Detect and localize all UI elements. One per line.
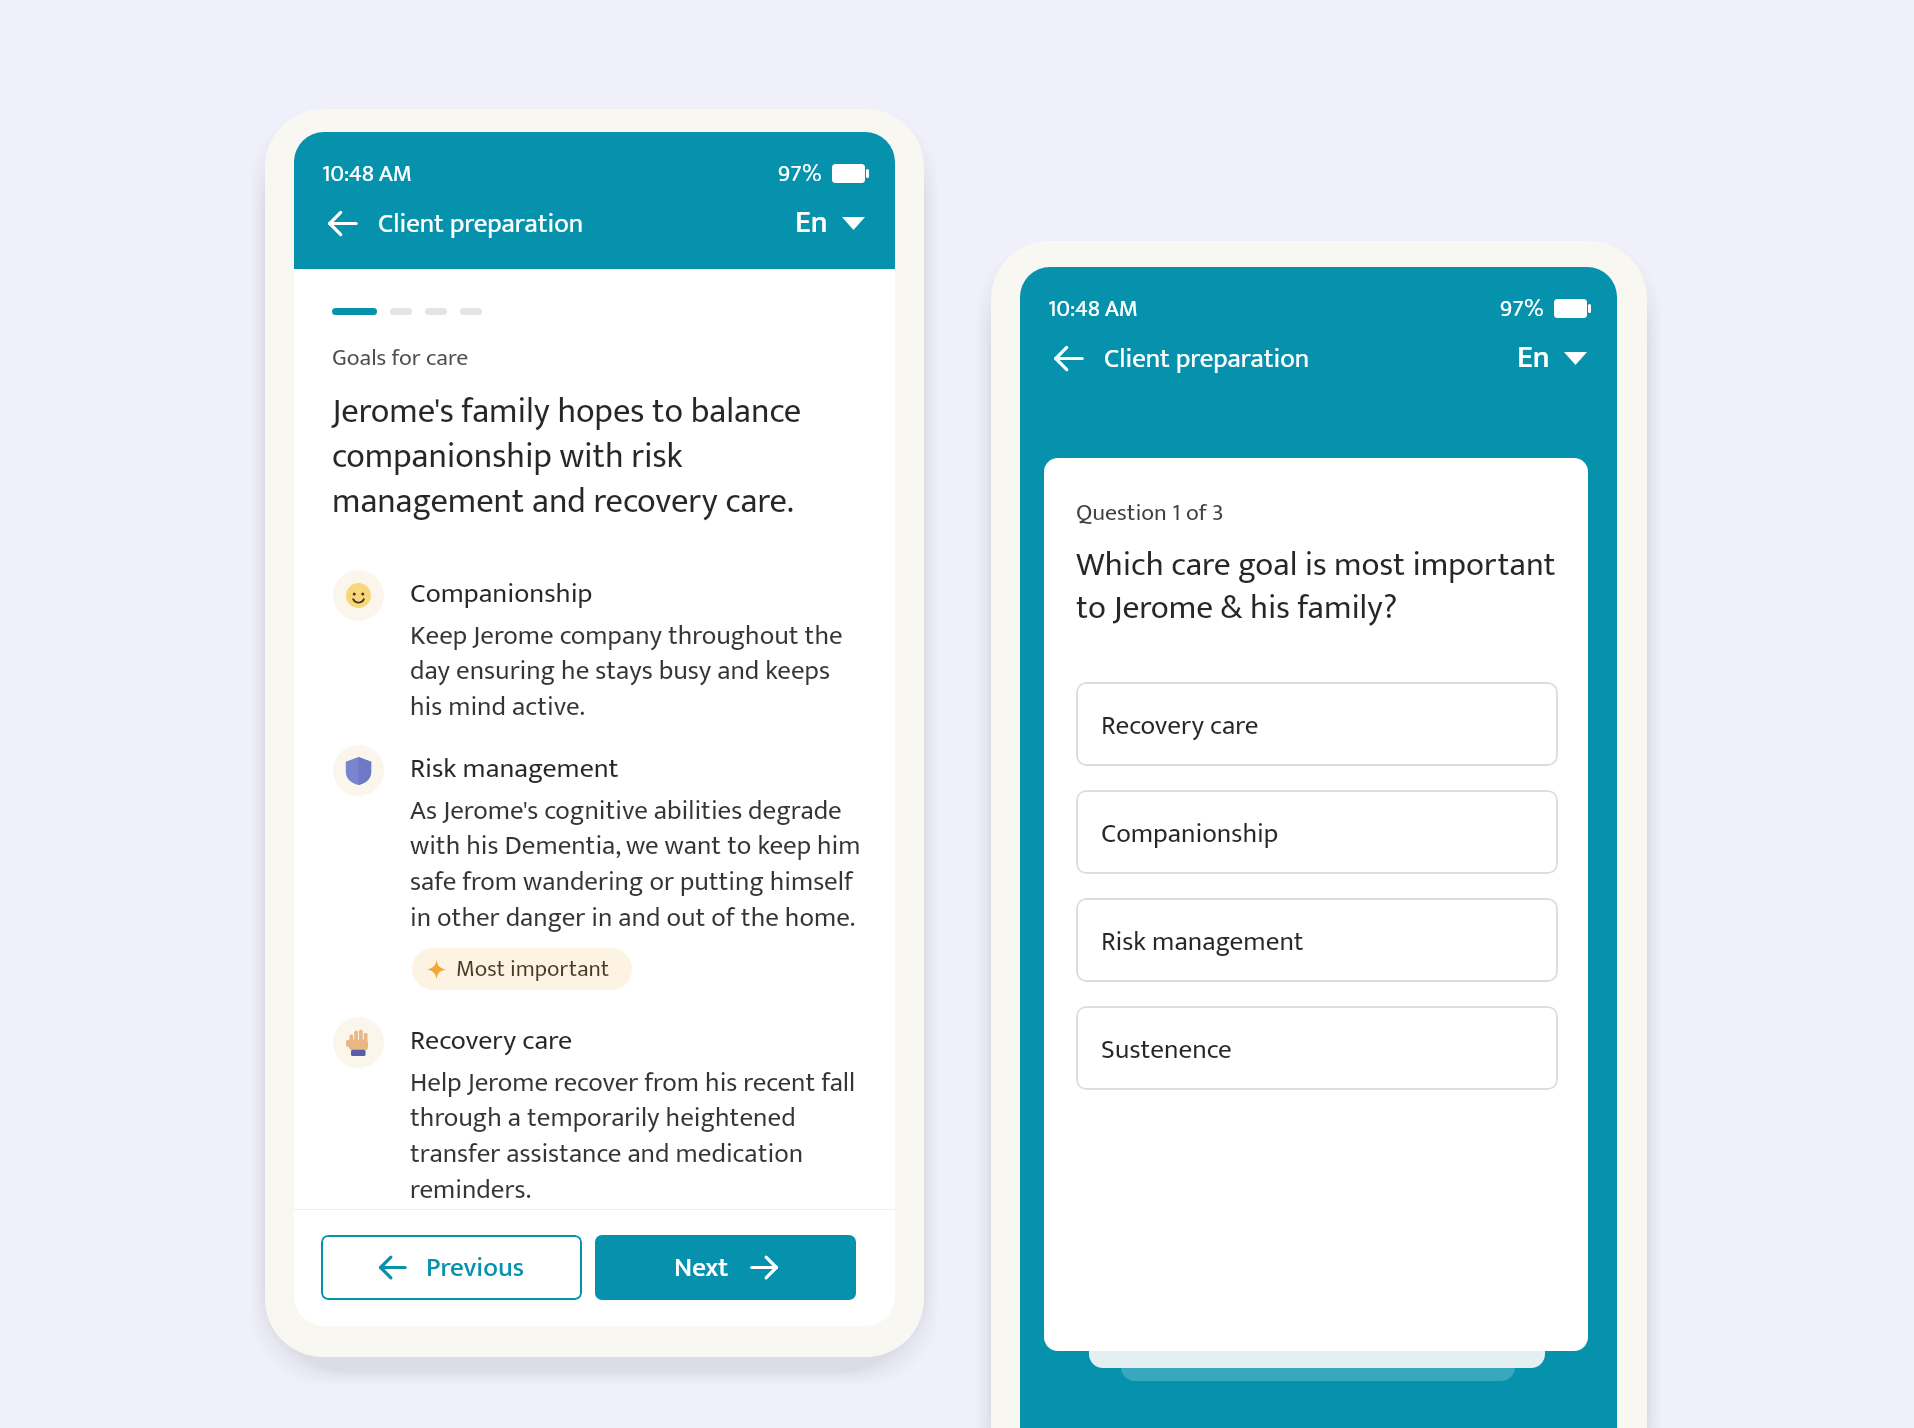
staticText: Goals for care: [332, 338, 469, 378]
staticText: Question 1 of 3: [1076, 493, 1224, 533]
button[interactable]: Risk management: [1076, 898, 1558, 982]
staticText: Most important: [456, 950, 610, 988]
button[interactable]: Select language, English: [791, 193, 869, 253]
staticText: Next: [674, 1245, 729, 1290]
staticText: Sustenence: [1101, 1027, 1232, 1072]
button[interactable]: Next: [595, 1235, 856, 1300]
staticText: En: [795, 197, 828, 249]
staticText: 97%: [778, 154, 822, 193]
staticText: En: [1517, 332, 1550, 384]
staticText: Companionship: [1101, 811, 1279, 856]
staticText: Risk management: [1101, 919, 1304, 964]
button[interactable]: Sustenence: [1076, 1006, 1558, 1090]
button[interactable]: Back: [1046, 336, 1090, 380]
staticText: 10:48 AM: [322, 154, 412, 193]
button[interactable]: Recovery care: [1076, 682, 1558, 766]
button[interactable]: Back: [320, 201, 364, 245]
staticText: Help Jerome recover from his recent fall…: [410, 1060, 862, 1213]
staticText: Recovery care: [410, 1017, 573, 1064]
staticText: Jerome's family hopes to balance compani…: [332, 383, 858, 530]
button[interactable]: Previous: [321, 1235, 582, 1300]
staticText: Risk management: [410, 745, 619, 792]
staticText: Keep Jerome company throughout the day e…: [410, 613, 862, 730]
staticText: 10:48 AM: [1048, 289, 1138, 328]
staticText: Which care goal is most important to Jer…: [1076, 537, 1560, 636]
staticText: Client preparation: [1104, 336, 1310, 381]
staticText: 97%: [1500, 289, 1544, 328]
staticText: As Jerome's cognitive abilities degrade …: [410, 788, 862, 941]
button[interactable]: Companionship: [1076, 790, 1558, 874]
staticText: Recovery care: [1101, 703, 1259, 748]
staticText: Companionship: [410, 570, 593, 617]
button[interactable]: Most important: [412, 948, 632, 990]
staticText: Client preparation: [378, 201, 584, 246]
staticText: Previous: [426, 1245, 524, 1290]
button[interactable]: Select language, English: [1513, 328, 1591, 388]
